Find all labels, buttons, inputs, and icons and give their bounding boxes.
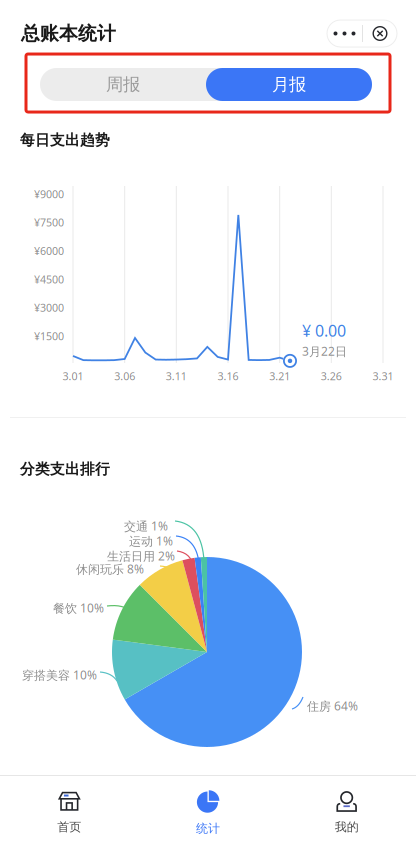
staticText: 3.06 [114, 369, 135, 383]
staticText: 3.31 [372, 369, 393, 383]
staticText: 总账本统计 [21, 22, 116, 45]
staticText: 3月22日 [302, 343, 347, 359]
staticText: 周报 [106, 74, 140, 95]
staticText: 3.16 [217, 369, 238, 383]
staticText: ¥3000 [34, 301, 64, 315]
staticText: 休闲玩乐 8% [76, 561, 144, 577]
button[interactable]: 首页 [0, 783, 139, 843]
staticText: 运动 1% [129, 533, 173, 549]
staticText: 每日支出趋势 [20, 131, 110, 149]
staticText: 分类支出排行 [20, 460, 110, 478]
staticText: ¥7500 [34, 215, 64, 230]
staticText: ¥6000 [34, 244, 64, 258]
staticText: ¥9000 [34, 187, 64, 201]
button[interactable]: More [327, 20, 397, 47]
staticText: 餐饮 10% [53, 600, 104, 616]
staticText: 交通 1% [124, 518, 168, 534]
button[interactable]: 统计 [139, 783, 277, 843]
staticText: 生活日用 2% [107, 548, 175, 564]
staticText: 统计 [196, 821, 220, 836]
staticText: 首页 [57, 820, 81, 834]
staticText: 我的 [335, 820, 359, 834]
staticText: ¥1500 [34, 329, 64, 343]
staticText: 3.01 [62, 369, 83, 383]
staticText: 穿搭美容 10% [22, 667, 97, 683]
staticText: 月报 [272, 74, 306, 95]
button[interactable]: 我的 [277, 783, 416, 843]
staticText: 3.11 [166, 369, 187, 383]
staticText: ¥ 0.00 [302, 320, 346, 341]
staticText: 3.21 [269, 369, 290, 383]
button[interactable]: 月报 [206, 68, 372, 101]
button[interactable]: 周报 [40, 68, 206, 101]
staticText: 住房 64% [307, 698, 358, 714]
staticText: 3.26 [321, 369, 342, 383]
staticText: ¥4500 [34, 272, 64, 286]
